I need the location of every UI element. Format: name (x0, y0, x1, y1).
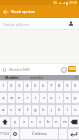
staticText: e (18, 95, 21, 101)
staticText: 0 (74, 83, 77, 89)
button[interactable]: r (24, 93, 31, 103)
button[interactable]: z (40, 93, 47, 103)
staticText: Čeština (32, 131, 47, 137)
button[interactable]: h (40, 105, 47, 115)
button[interactable]: c (29, 117, 36, 127)
button[interactable]: g (32, 105, 39, 115)
button[interactable]: . (59, 129, 67, 139)
button[interactable]: q (0, 93, 7, 103)
staticText: p (74, 95, 77, 101)
button[interactable]: i (56, 93, 63, 103)
staticText: 4 (26, 83, 29, 89)
staticText: 4G (53, 1, 57, 5)
button[interactable]: 7 (48, 81, 55, 91)
staticText: 5 (34, 83, 37, 89)
button[interactable]: More suggestions (74, 75, 79, 80)
button[interactable]: t (32, 93, 39, 103)
button[interactable]: Add recipient from contacts (66, 19, 76, 29)
staticText: 7 (50, 83, 53, 89)
staticText: o (66, 95, 69, 101)
button[interactable]: 6 (40, 81, 47, 91)
staticText: 6 (42, 83, 45, 89)
staticText: j (51, 107, 53, 113)
staticText: 2 (10, 83, 13, 89)
button[interactable]: Back (0, 5, 11, 18)
button[interactable]: p (72, 93, 79, 103)
staticText: v (39, 119, 42, 125)
button[interactable]: u (48, 93, 55, 103)
staticText: m (63, 119, 67, 125)
staticText: t (35, 95, 37, 101)
button[interactable]: Mobilní (0, 75, 24, 80)
staticText: c (31, 119, 34, 125)
button[interactable]: 4 (24, 81, 31, 91)
button[interactable]: mobilní (24, 75, 49, 80)
staticText: . (62, 131, 64, 137)
button[interactable]: n (53, 117, 60, 127)
staticText: Mobilní SMS (9, 67, 30, 72)
button[interactable]: 2 (8, 81, 15, 91)
staticText: x (23, 119, 26, 125)
button[interactable]: v (37, 117, 44, 127)
staticText: n (55, 119, 58, 125)
button[interactable]: ?123 (0, 129, 10, 139)
staticText: s (10, 107, 13, 113)
button[interactable]: e (16, 93, 23, 103)
button[interactable]: m (61, 117, 68, 127)
button[interactable]: Attach (0, 65, 9, 74)
button[interactable]: d (16, 105, 23, 115)
staticText: 1 (2, 83, 5, 89)
button[interactable]: Settings (11, 129, 19, 139)
staticText: b (47, 119, 50, 125)
staticText: d (18, 107, 21, 113)
staticText: Zadejte příjemce (3, 22, 30, 27)
staticText: k (58, 107, 61, 113)
button[interactable]: Backspace (69, 117, 79, 127)
button[interactable]: Shift (0, 117, 10, 127)
staticText: f (27, 107, 29, 113)
button[interactable]: l (64, 105, 71, 115)
staticText: g (34, 107, 37, 113)
button[interactable]: y (11, 117, 19, 127)
staticText: mobilní (30, 75, 43, 80)
staticText: a (2, 107, 5, 113)
staticText: z (43, 95, 45, 101)
staticText: 3 (18, 83, 21, 89)
button[interactable]: 5 (32, 81, 39, 91)
button[interactable]: SMS (68, 66, 76, 72)
button[interactable]: s (8, 105, 15, 115)
staticText: 8 (58, 83, 61, 89)
button[interactable]: Enter (68, 129, 79, 139)
staticText: 9 (66, 83, 69, 89)
button[interactable]: f (24, 105, 31, 115)
staticText: Nová zpráva (11, 9, 35, 14)
staticText: u (50, 95, 53, 101)
button[interactable]: b (45, 117, 52, 127)
staticText: r (27, 95, 29, 101)
staticText: y (14, 119, 17, 125)
button[interactable]: k (56, 105, 63, 115)
button[interactable]: Čeština (20, 129, 58, 139)
button[interactable]: o (64, 93, 71, 103)
button[interactable]: ů (72, 105, 79, 115)
button[interactable]: 1 (0, 81, 7, 91)
staticText: Mobilní (5, 75, 19, 80)
staticText: SMS (69, 67, 76, 71)
staticText: q (2, 95, 5, 101)
button[interactable]: 3 (16, 81, 23, 91)
button[interactable]: x (20, 117, 28, 127)
staticText: i (59, 95, 61, 101)
staticText: w (10, 95, 14, 101)
button[interactable]: 9 (64, 81, 71, 91)
button[interactable]: Emoji (59, 65, 68, 74)
button[interactable]: w (8, 93, 15, 103)
button[interactable]: j (48, 105, 55, 115)
staticText: l (67, 107, 69, 113)
staticText: ů (74, 107, 77, 113)
button[interactable]: a (0, 105, 7, 115)
button[interactable]: 8 (56, 81, 63, 91)
staticText: 23:16 (69, 1, 78, 5)
staticText: ?123 (0, 131, 10, 137)
button[interactable]: 0 (72, 81, 79, 91)
